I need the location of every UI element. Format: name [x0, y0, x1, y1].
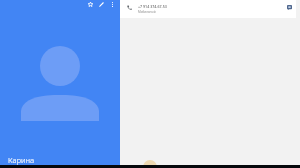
- button[interactable]: Add to favorites: [85, 0, 96, 10]
- button[interactable]: Edit contact: [96, 0, 107, 10]
- button[interactable]: More options: [107, 0, 118, 10]
- staticText: Карина: [8, 155, 35, 165]
- staticText: +7 914 374-67-53: [138, 4, 167, 9]
- button[interactable]: +7 914 374-67-53: [120, 0, 296, 18]
- button[interactable]: Send message: [282, 0, 296, 14]
- button[interactable]: Contact photo: [143, 160, 157, 168]
- staticText: Мобильный: [138, 10, 156, 14]
